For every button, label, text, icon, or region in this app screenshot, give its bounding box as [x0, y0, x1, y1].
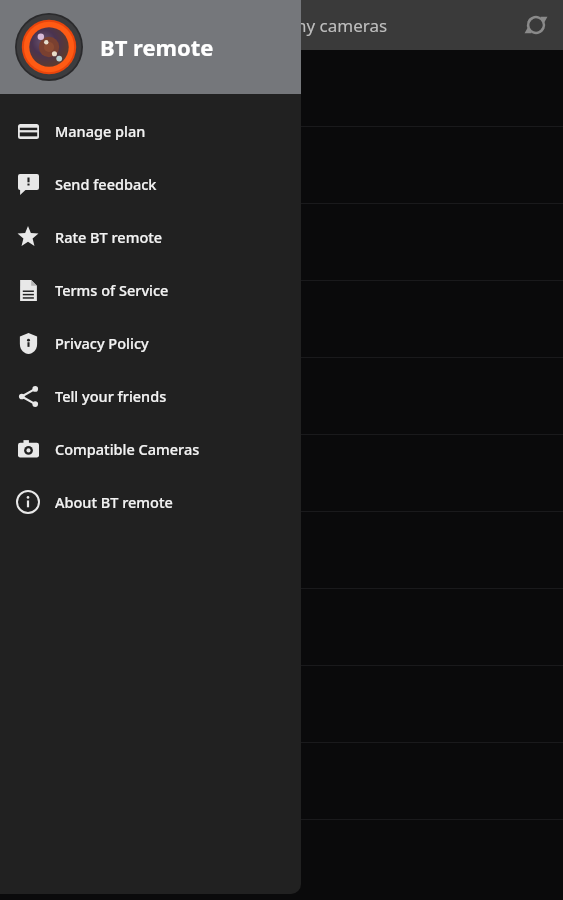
staticText: Send feedback [55, 174, 157, 194]
button[interactable] [0, 435, 563, 512]
button[interactable] [0, 512, 563, 589]
staticText: Tell your friends [55, 386, 167, 406]
staticText: Compatible Cameras [55, 439, 200, 459]
button[interactable] [0, 589, 563, 666]
button[interactable]: About BT remote [0, 475, 301, 528]
staticText: About BT remote [55, 492, 173, 512]
staticText: Privacy Policy [55, 333, 149, 353]
button[interactable] [0, 743, 563, 820]
button[interactable] [0, 127, 563, 204]
button[interactable] [0, 50, 563, 127]
staticText: Terms of Service [55, 280, 169, 300]
button[interactable]: Terms of Service [0, 263, 301, 316]
button[interactable]: Manage plan [0, 104, 301, 157]
button[interactable]: BT remote [0, 0, 301, 94]
button[interactable]: Rate BT remote [0, 210, 301, 263]
button[interactable]: Refresh [512, 1, 560, 49]
button[interactable]: Compatible Cameras [0, 422, 301, 475]
staticText: BT remote [100, 32, 214, 62]
button[interactable]: Tell your friends [0, 369, 301, 422]
button[interactable] [0, 281, 563, 358]
staticText: ny cameras [296, 14, 388, 37]
button[interactable]: Send feedback [0, 157, 301, 210]
button[interactable]: Privacy Policy [0, 316, 301, 369]
staticText: Manage plan [55, 121, 146, 141]
button[interactable] [0, 666, 563, 743]
button[interactable] [0, 204, 563, 281]
button[interactable] [0, 358, 563, 435]
staticText: Rate BT remote [55, 227, 163, 247]
